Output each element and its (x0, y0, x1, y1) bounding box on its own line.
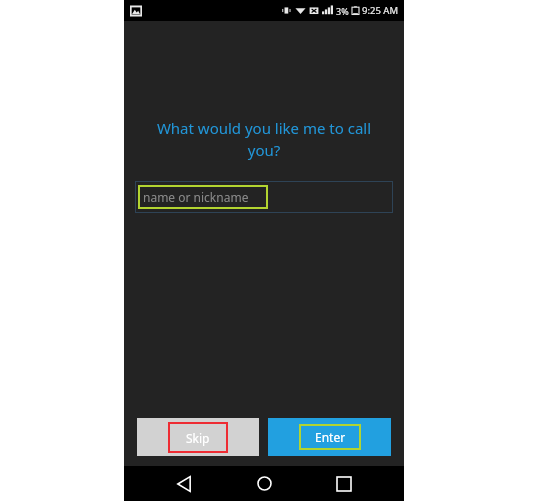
staticText: name or nickname (143, 189, 249, 205)
staticText: 3% (336, 5, 349, 17)
button[interactable]: Home (244, 466, 284, 501)
staticText: Skip (186, 430, 210, 446)
staticText: Enter (315, 429, 346, 445)
button[interactable]: Skip (137, 418, 259, 456)
button[interactable]: Recent apps (324, 466, 364, 501)
button[interactable]: name or nickname (135, 181, 393, 213)
button[interactable]: Enter (268, 418, 391, 456)
staticText: What would you like me to call you? (150, 118, 378, 161)
staticText: 9:25 AM (362, 4, 399, 17)
button[interactable]: Back (164, 466, 204, 501)
